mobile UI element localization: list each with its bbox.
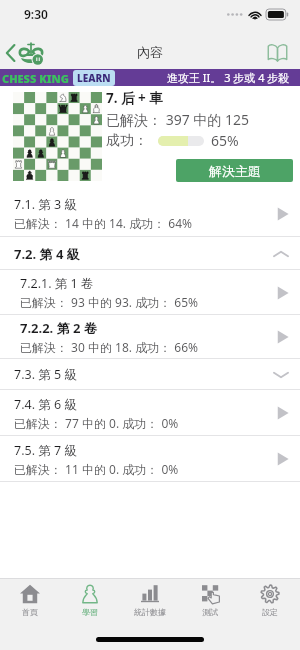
button[interactable]: 統計數據 — [120, 579, 180, 622]
staticText: LEARN — [77, 71, 111, 85]
staticText: 7. 后 + 車 — [106, 89, 163, 107]
staticText: 成功： — [106, 132, 148, 150]
button[interactable]: Back — [0, 37, 48, 68]
staticText: 7.4. 第 6 級 — [14, 396, 77, 413]
staticText: 已解決： 397 中的 125 — [106, 110, 249, 129]
staticText: 7.2. 第 4 級 — [14, 245, 80, 263]
staticText: 已解決： 14 中的 14. 成功： 64% — [14, 215, 192, 231]
staticText: 已解決： 93 中的 93. 成功： 65% — [20, 294, 198, 310]
button[interactable]: 解決主題 — [176, 159, 293, 182]
button[interactable]: 7.5. 第 7 級 — [0, 436, 300, 482]
staticText: 7.2.1. 第 1 卷 — [20, 275, 94, 292]
staticText: 已解決： 11 中的 0. 成功： 0% — [14, 461, 179, 477]
staticText: 進攻王 II。 3 步或 4 步殺 — [167, 70, 290, 85]
button[interactable]: 7.2.1. 第 1 卷 — [0, 270, 300, 315]
button[interactable]: 7.2.2. 第 2 卷 — [0, 315, 300, 359]
staticText: 7.1. 第 3 級 — [14, 196, 77, 213]
button[interactable]: 7.4. 第 6 級 — [0, 390, 300, 436]
button[interactable]: 設定 — [240, 579, 300, 622]
button[interactable]: Open book — [255, 35, 300, 70]
button[interactable]: 首頁 — [0, 579, 60, 622]
staticText: 首頁 — [22, 607, 38, 617]
button[interactable]: 7.3. 第 5 級 — [0, 359, 300, 390]
staticText: 測試 — [202, 607, 218, 617]
staticText: 已解決： 30 中的 18. 成功： 66% — [20, 339, 198, 355]
button[interactable]: 學習 — [60, 579, 120, 622]
staticText: 7.2.2. 第 2 卷 — [20, 319, 97, 337]
staticText: 65% — [211, 131, 239, 150]
staticText: 學習 — [82, 607, 98, 617]
staticText: 7.5. 第 7 級 — [14, 442, 77, 459]
staticText: CHESS KING — [2, 71, 69, 86]
button[interactable]: 7.2. 第 4 級 — [0, 237, 300, 270]
button[interactable]: 測試 — [180, 579, 240, 622]
staticText: 設定 — [262, 607, 278, 617]
staticText: 已解決： 77 中的 0. 成功： 0% — [14, 415, 179, 431]
button[interactable]: 7.1. 第 3 級 — [0, 190, 300, 237]
staticText: 7.3. 第 5 級 — [14, 366, 77, 383]
staticText: 解決主題 — [209, 163, 261, 179]
staticText: 9:30 — [24, 6, 48, 22]
staticText: 內容 — [137, 44, 163, 60]
staticText: 統計數據 — [134, 607, 166, 617]
